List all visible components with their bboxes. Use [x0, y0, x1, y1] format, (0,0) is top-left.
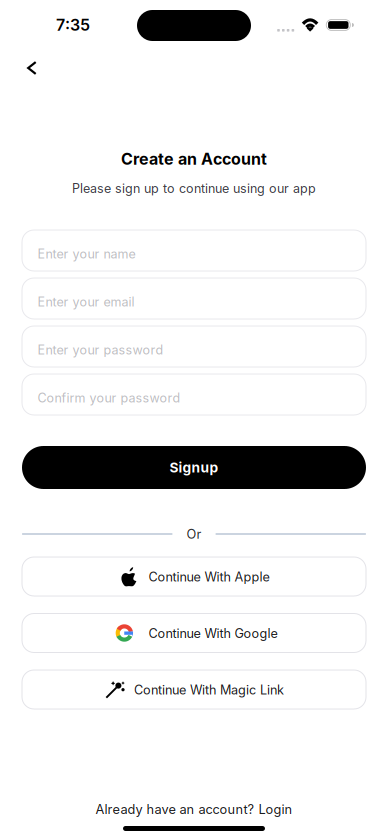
- button[interactable]: Continue With Magic Link: [22, 670, 366, 709]
- staticText: Signup: [169, 459, 218, 476]
- staticText: Already have an account? Login: [95, 801, 292, 817]
- staticText: Continue With Magic Link: [134, 682, 284, 697]
- staticText: Or: [186, 526, 201, 542]
- staticText: Confirm your password: [37, 390, 180, 405]
- staticText: 7:35: [56, 15, 90, 35]
- button[interactable]: Already have an account? Login: [71, 795, 316, 823]
- staticText: Please sign up to continue using our app: [72, 181, 316, 196]
- staticText: Enter your email: [37, 294, 134, 309]
- button[interactable]: Continue With Apple: [22, 557, 366, 596]
- staticText: Continue With Apple: [148, 569, 269, 584]
- button[interactable]: Continue With Google: [22, 613, 366, 652]
- button[interactable]: Back: [0, 54, 55, 86]
- staticText: Continue With Google: [148, 626, 277, 641]
- staticText: Enter your name: [37, 246, 135, 261]
- button[interactable]: Signup: [22, 446, 366, 489]
- staticText: Enter your password: [37, 342, 163, 357]
- staticText: Create an Account: [121, 149, 267, 169]
